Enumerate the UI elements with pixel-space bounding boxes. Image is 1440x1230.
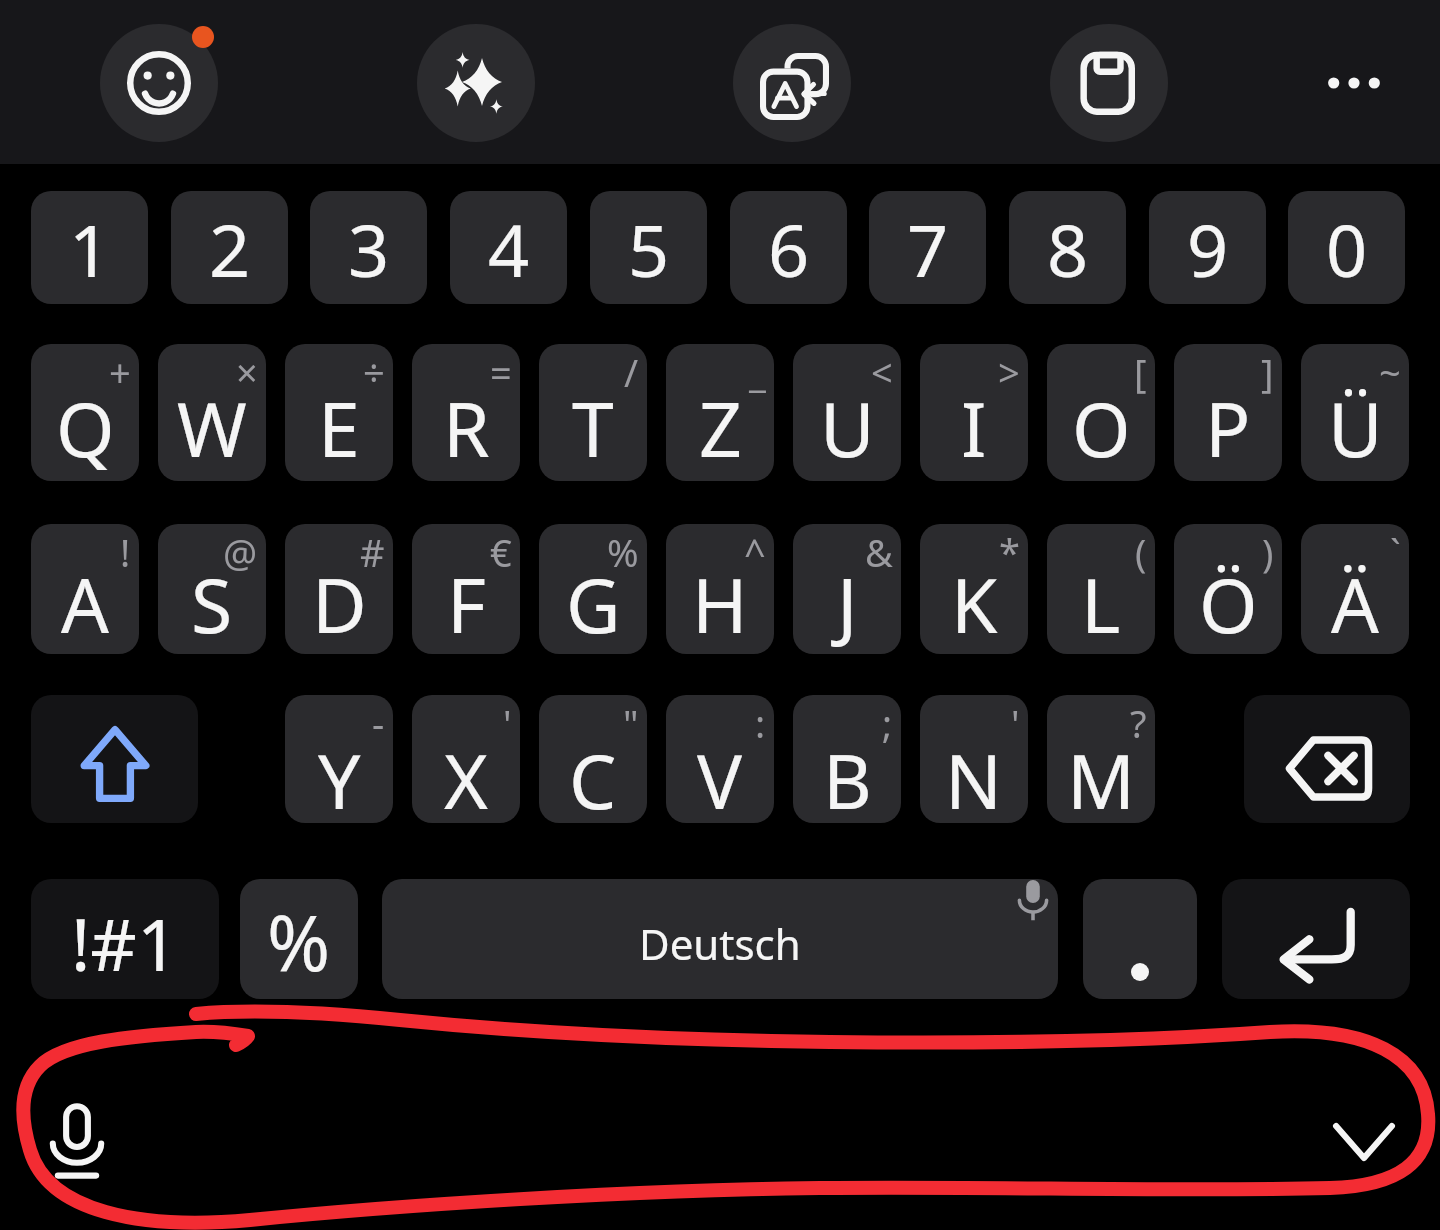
staticText: & bbox=[865, 526, 893, 578]
button[interactable]: 7 bbox=[869, 191, 986, 304]
button[interactable]: ` bbox=[1301, 524, 1409, 654]
staticText: Q bbox=[56, 377, 115, 479]
button[interactable]: Hide keyboard bbox=[1304, 1083, 1418, 1197]
staticText: 6 bbox=[768, 200, 810, 298]
staticText: P bbox=[1205, 377, 1251, 479]
button[interactable]: ; bbox=[793, 695, 901, 823]
button[interactable] bbox=[1244, 695, 1410, 823]
staticText: ^ bbox=[744, 526, 766, 578]
staticText: ÷ bbox=[363, 346, 385, 398]
button[interactable] bbox=[31, 695, 198, 823]
button[interactable]: ? bbox=[1047, 695, 1155, 823]
staticText: [ bbox=[1134, 346, 1147, 398]
button[interactable]: AI writing tools bbox=[417, 24, 535, 142]
button[interactable] bbox=[1222, 879, 1410, 999]
staticText: U bbox=[820, 377, 875, 479]
button[interactable]: / bbox=[539, 344, 647, 481]
button[interactable]: ' bbox=[412, 695, 520, 823]
button[interactable]: ) bbox=[1174, 524, 1282, 654]
button[interactable] bbox=[1083, 879, 1197, 999]
button[interactable]: Voice input bbox=[20, 1083, 134, 1197]
staticText: : bbox=[755, 697, 766, 749]
staticText: - bbox=[372, 697, 385, 749]
button[interactable]: [ bbox=[1047, 344, 1155, 481]
button[interactable]: % bbox=[240, 879, 358, 999]
staticText: 7 bbox=[907, 200, 949, 298]
button[interactable]: = bbox=[412, 344, 520, 481]
staticText: R bbox=[443, 377, 490, 479]
button[interactable]: € bbox=[412, 524, 520, 654]
staticText: % bbox=[607, 526, 639, 578]
staticText: 8 bbox=[1047, 200, 1089, 298]
staticText: D bbox=[312, 553, 367, 654]
button[interactable]: !#1 bbox=[31, 879, 219, 999]
staticText: L bbox=[1081, 553, 1121, 654]
button[interactable]: Deutsch bbox=[382, 879, 1058, 999]
button[interactable]: > bbox=[920, 344, 1028, 481]
button[interactable]: ~ bbox=[1301, 344, 1409, 481]
button[interactable]: # bbox=[285, 524, 393, 654]
staticText: K bbox=[951, 553, 998, 654]
staticText: < bbox=[871, 346, 893, 398]
staticText: S bbox=[191, 553, 233, 654]
staticText: Y bbox=[318, 729, 361, 823]
staticText: ? bbox=[1130, 697, 1147, 749]
button[interactable]: Translate bbox=[733, 24, 851, 142]
button[interactable]: ' bbox=[920, 695, 1028, 823]
button[interactable]: 1 bbox=[31, 191, 148, 304]
staticText: ~ bbox=[1379, 346, 1401, 398]
button[interactable]: 6 bbox=[730, 191, 847, 304]
button[interactable]: 2 bbox=[171, 191, 288, 304]
button[interactable]: 0 bbox=[1288, 191, 1405, 304]
staticText: @ bbox=[223, 526, 258, 578]
staticText: Ü bbox=[1328, 377, 1383, 479]
button[interactable]: 9 bbox=[1149, 191, 1266, 304]
staticText: ! bbox=[120, 526, 131, 578]
button[interactable]: ÷ bbox=[285, 344, 393, 481]
button[interactable]: % bbox=[539, 524, 647, 654]
button[interactable]: _ bbox=[666, 344, 774, 481]
staticText: ; bbox=[882, 697, 893, 749]
staticText: # bbox=[360, 526, 385, 578]
button[interactable]: - bbox=[285, 695, 393, 823]
staticText: Z bbox=[699, 377, 742, 479]
button[interactable]: × bbox=[158, 344, 266, 481]
button[interactable]: ^ bbox=[666, 524, 774, 654]
staticText: ' bbox=[503, 697, 512, 749]
button[interactable]: @ bbox=[158, 524, 266, 654]
button[interactable]: * bbox=[920, 524, 1028, 654]
staticText: F bbox=[447, 553, 486, 654]
button[interactable]: 8 bbox=[1009, 191, 1126, 304]
staticText: H bbox=[692, 553, 748, 654]
button[interactable]: Clipboard bbox=[1050, 24, 1168, 142]
button[interactable]: ( bbox=[1047, 524, 1155, 654]
staticText: G bbox=[566, 553, 621, 654]
staticText: I bbox=[961, 377, 987, 479]
button[interactable]: 3 bbox=[310, 191, 427, 304]
staticText: 4 bbox=[488, 200, 530, 298]
staticText: B bbox=[823, 729, 872, 823]
button[interactable]: 5 bbox=[590, 191, 707, 304]
button[interactable]: ] bbox=[1174, 344, 1282, 481]
staticText: N bbox=[945, 729, 1003, 823]
button[interactable]: 4 bbox=[450, 191, 567, 304]
button[interactable]: & bbox=[793, 524, 901, 654]
staticText: O bbox=[1072, 377, 1131, 479]
staticText: / bbox=[624, 346, 639, 398]
staticText: A bbox=[61, 553, 109, 654]
staticText: ' bbox=[1011, 697, 1020, 749]
button[interactable]: : bbox=[666, 695, 774, 823]
button[interactable]: ! bbox=[31, 524, 139, 654]
staticText: E bbox=[318, 377, 360, 479]
button[interactable]: + bbox=[31, 344, 139, 481]
staticText: = bbox=[490, 346, 512, 398]
staticText: ` bbox=[1390, 526, 1401, 578]
staticText: X bbox=[444, 729, 488, 823]
staticText: 9 bbox=[1187, 200, 1229, 298]
button[interactable]: < bbox=[793, 344, 901, 481]
button[interactable]: Emoji bbox=[100, 24, 218, 142]
button[interactable]: " bbox=[539, 695, 647, 823]
button[interactable]: More options bbox=[1295, 24, 1413, 142]
staticText: * bbox=[999, 526, 1020, 578]
staticText: > bbox=[998, 346, 1020, 398]
